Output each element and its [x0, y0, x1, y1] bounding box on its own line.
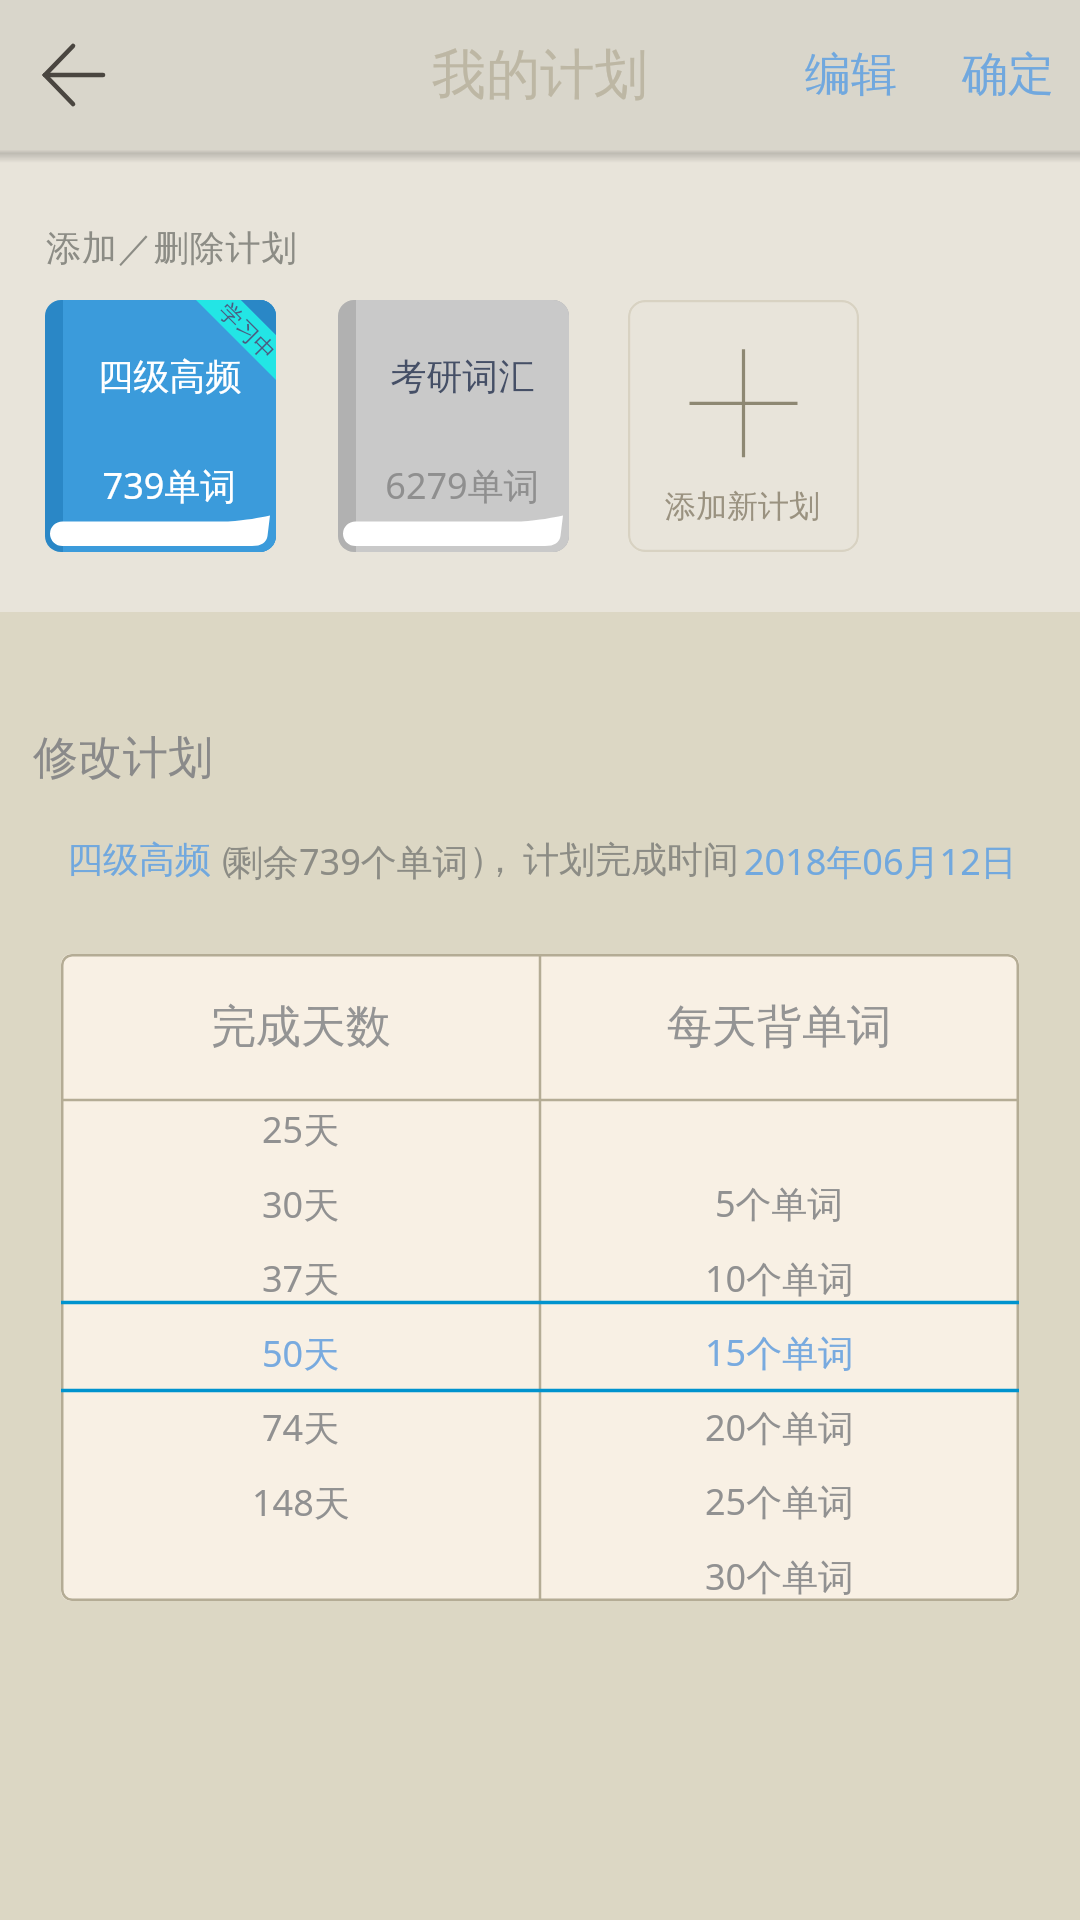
staticText: 添加／删除计划: [46, 226, 298, 270]
staticText: 2018年06月12日: [744, 837, 1017, 886]
staticText: ，: [482, 837, 518, 882]
staticText: 剩余739个单词: [227, 837, 469, 886]
button[interactable]: 74天: [61, 1390, 540, 1464]
staticText: 25天: [262, 1105, 340, 1154]
button[interactable]: 25天: [61, 1092, 540, 1166]
staticText: 30个单词: [705, 1552, 855, 1601]
button[interactable]: 5个单词: [540, 1166, 1019, 1240]
staticText: 我的计划: [432, 41, 648, 109]
staticText: 完成天数: [211, 999, 391, 1056]
staticText: 每天背单词: [667, 999, 892, 1056]
staticText: （: [200, 837, 236, 882]
staticText: 添加新计划: [665, 487, 820, 526]
staticText: 10个单词: [705, 1254, 855, 1303]
staticText: 6279单词: [356, 461, 569, 510]
button[interactable]: 每天背单词: [540, 954, 1019, 1100]
button[interactable]: 25个单词: [540, 1464, 1019, 1538]
staticText: 确定: [962, 46, 1054, 104]
staticText: 学习中: [212, 300, 276, 366]
staticText: ）: [469, 837, 505, 882]
button[interactable]: Back: [0, 0, 148, 150]
button[interactable]: 20个单词: [540, 1390, 1019, 1464]
button[interactable]: 编辑: [789, 20, 913, 130]
staticText: 37天: [262, 1254, 340, 1303]
button[interactable]: 考研词汇: [338, 300, 569, 552]
staticText: 计划完成时间: [523, 837, 739, 882]
staticText: 739单词: [63, 461, 276, 510]
button[interactable]: 添加新计划: [628, 300, 859, 552]
staticText: 四级高频: [67, 837, 211, 882]
button[interactable]: 10个单词: [540, 1241, 1019, 1315]
staticText: 25个单词: [705, 1477, 855, 1526]
button[interactable]: 30个单词: [540, 1539, 1019, 1601]
staticText: 考研词汇: [356, 354, 569, 399]
staticText: 50天: [262, 1329, 340, 1378]
button[interactable]: 四级高频: [45, 300, 276, 552]
staticText: 20个单词: [705, 1403, 855, 1452]
button[interactable]: 50天: [61, 1316, 540, 1390]
staticText: 30天: [262, 1180, 340, 1229]
staticText: 5个单词: [715, 1179, 844, 1228]
button[interactable]: 30天: [61, 1167, 540, 1241]
staticText: 四级高频: [63, 354, 276, 399]
staticText: 修改计划: [33, 730, 213, 787]
button[interactable]: 完成天数: [61, 954, 540, 1100]
staticText: 74天: [262, 1403, 340, 1452]
staticText: 编辑: [805, 46, 897, 104]
button[interactable]: 确定: [946, 20, 1070, 130]
button[interactable]: 37天: [61, 1241, 540, 1315]
button[interactable]: 15个单词: [540, 1315, 1019, 1389]
staticText: 148天: [252, 1478, 350, 1527]
button[interactable]: 148天: [61, 1465, 540, 1539]
staticText: 15个单词: [705, 1328, 855, 1377]
